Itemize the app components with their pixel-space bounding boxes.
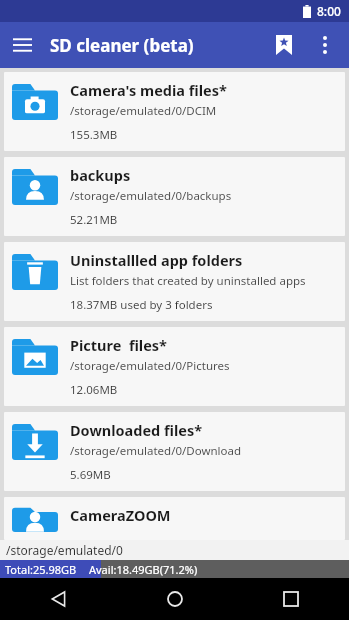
staticText: 5.69MB: [70, 467, 111, 483]
staticText: 18.37MB used by 3 folders: [70, 297, 213, 313]
staticText: 12.06MB: [70, 382, 118, 398]
button[interactable]: Recent apps: [233, 578, 349, 620]
button[interactable]: Picture files*: [4, 327, 345, 406]
staticText: /storage/emulated/0/DCIM: [70, 103, 217, 119]
staticText: Uninstallled app folders: [70, 250, 243, 270]
button[interactable]: Home: [117, 578, 233, 620]
button[interactable]: Back: [0, 578, 117, 620]
staticText: SD cleaner (beta): [50, 34, 194, 57]
staticText: /storage/emulated/0/Download: [70, 443, 242, 459]
staticText: 155.3MB: [70, 127, 118, 143]
staticText: Avail:18.49GB(71.2%): [89, 562, 198, 577]
staticText: /storage/emulated/0: [6, 542, 123, 558]
staticText: Downloaded files*: [70, 420, 203, 440]
staticText: Total:25.98GB: [5, 562, 77, 577]
staticText: Camera's media files*: [70, 80, 227, 100]
staticText: CameraZOOM: [70, 505, 171, 525]
button[interactable]: More options: [305, 25, 345, 65]
button[interactable]: Uninstallled app folders: [4, 242, 345, 321]
button[interactable]: Downloaded files*: [4, 412, 345, 491]
staticText: Picture files*: [70, 335, 167, 355]
button[interactable]: Open navigation menu: [0, 23, 44, 67]
button[interactable]: Bookmarks: [263, 24, 305, 66]
staticText: /storage/emulated/0/Pictures: [70, 358, 230, 374]
staticText: List folders that created by uninstalled…: [70, 273, 306, 289]
button[interactable]: backups: [4, 157, 345, 236]
staticText: /storage/emulated/0/backups: [70, 188, 232, 204]
button[interactable]: /storage/emulated/0: [0, 540, 349, 560]
staticText: 8:00: [317, 3, 341, 19]
staticText: backups: [70, 165, 131, 185]
button[interactable]: Camera's media files*: [4, 72, 345, 151]
staticText: 52.21MB: [70, 212, 118, 228]
button[interactable]: CameraZOOM: [4, 497, 345, 540]
